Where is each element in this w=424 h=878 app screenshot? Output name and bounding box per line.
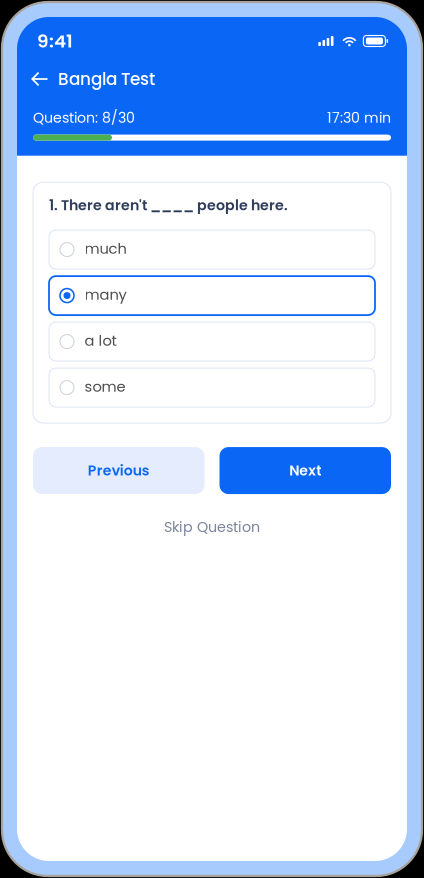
staticText: 9:41	[37, 28, 73, 54]
button[interactable]: many	[49, 276, 375, 315]
button[interactable]: a lot	[49, 322, 375, 361]
staticText: Previous	[88, 461, 150, 480]
button[interactable]: Previous	[33, 447, 204, 494]
staticText: some	[84, 376, 125, 397]
button[interactable]: some	[49, 368, 375, 407]
staticText: Question: 8/30	[33, 108, 135, 128]
button[interactable]: Skip Question	[152, 510, 272, 544]
staticText: a lot	[84, 330, 116, 351]
button[interactable]: much	[49, 230, 375, 269]
staticText: 17:30 min	[327, 108, 391, 128]
staticText: Skip Question	[164, 517, 260, 537]
staticText: much	[84, 238, 126, 259]
staticText: many	[84, 284, 126, 305]
staticText: Next	[289, 461, 321, 480]
staticText: 1. There aren't ____ people here.	[49, 195, 288, 215]
button[interactable]: Next	[219, 447, 391, 494]
staticText: Bangla Test	[58, 67, 155, 91]
button[interactable]: Back	[31, 65, 54, 93]
